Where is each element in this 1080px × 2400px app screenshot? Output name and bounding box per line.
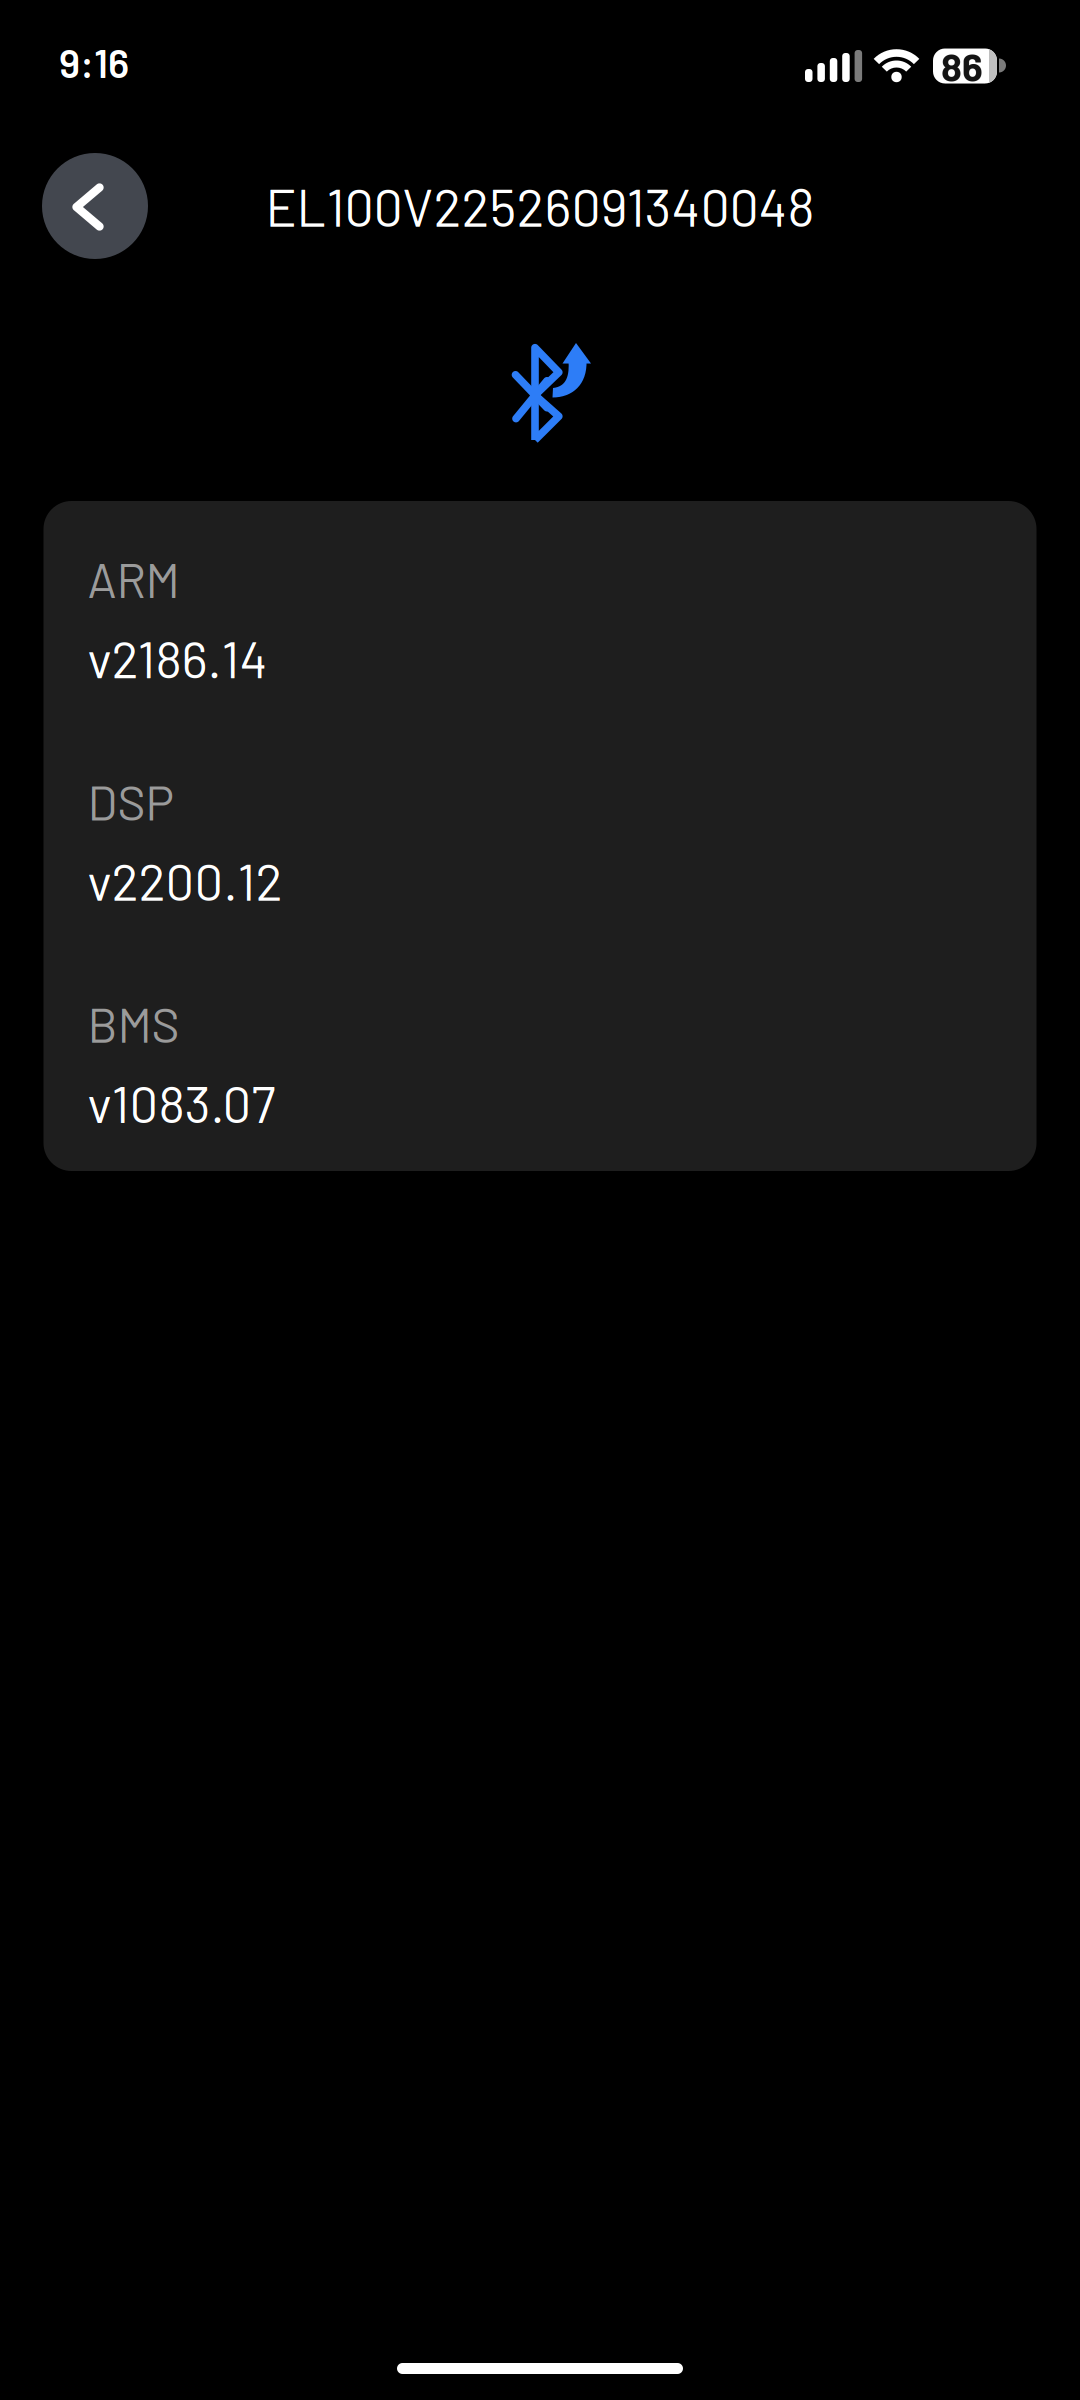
staticText: v1083.07	[87, 1072, 275, 1133]
staticText: DSP	[87, 772, 173, 830]
staticText: 86	[941, 43, 983, 89]
staticText: v2200.12	[87, 850, 282, 911]
button[interactable]: Back	[42, 153, 148, 259]
staticText: EL100V22526091340048	[265, 175, 814, 237]
staticText: BMS	[87, 995, 179, 1052]
staticText: 9:16	[59, 38, 129, 86]
staticText: ARM	[87, 550, 179, 608]
staticText: v2186.14	[87, 628, 267, 688]
